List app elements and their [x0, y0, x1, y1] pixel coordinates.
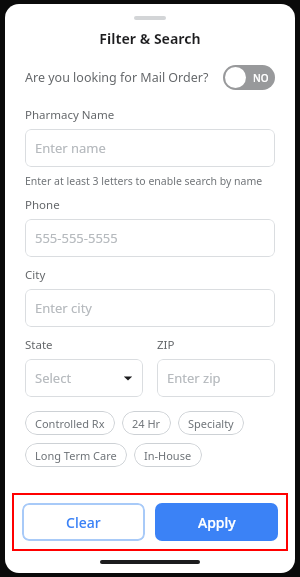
staticText: Pharmacy Name: [25, 107, 115, 123]
staticText: Controlled Rx: [35, 416, 105, 431]
staticText: Specialty: [188, 416, 234, 431]
staticText: Are you looking for Mail Order?: [25, 69, 209, 86]
button[interactable]: Clear: [22, 503, 145, 541]
staticText: 24 Hr: [132, 416, 161, 431]
button[interactable]: Enter name: [25, 129, 275, 167]
button[interactable]: Apply: [155, 503, 278, 541]
staticText: City: [25, 267, 46, 283]
button[interactable]: Mail Order toggle, off: [223, 65, 275, 90]
staticText: Long Term Care: [35, 448, 117, 463]
staticText: Clear: [66, 513, 101, 532]
button[interactable]: In-House: [134, 443, 202, 467]
staticText: State: [25, 337, 53, 353]
button[interactable]: Controlled Rx: [25, 411, 115, 435]
staticText: Enter city: [35, 299, 92, 317]
staticText: NO: [253, 71, 269, 85]
staticText: In-House: [144, 448, 192, 463]
button[interactable]: Enter city: [25, 289, 275, 327]
staticText: Phone: [25, 197, 60, 213]
staticText: Enter zip: [167, 369, 221, 387]
button[interactable]: 24 Hr: [122, 411, 171, 435]
button[interactable]: Select: [25, 359, 143, 397]
staticText: Apply: [198, 513, 236, 532]
button[interactable]: 555-555-5555: [25, 219, 275, 257]
staticText: 555-555-5555: [35, 229, 118, 247]
button[interactable]: Enter zip: [157, 359, 275, 397]
staticText: ZIP: [157, 337, 175, 353]
staticText: Enter name: [35, 139, 106, 157]
button[interactable]: Long Term Care: [25, 443, 127, 467]
staticText: Filter & Search: [99, 29, 201, 48]
button[interactable]: Specialty: [178, 411, 244, 435]
staticText: Enter at least 3 letters to enable searc…: [25, 174, 263, 188]
staticText: Select: [35, 369, 72, 387]
